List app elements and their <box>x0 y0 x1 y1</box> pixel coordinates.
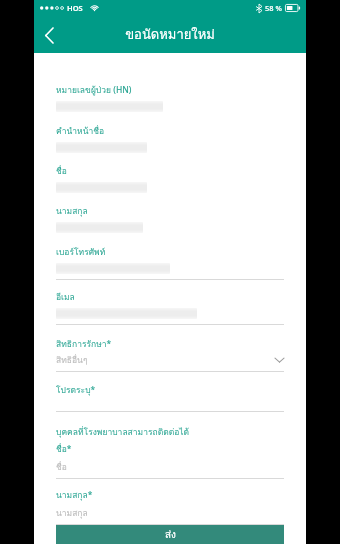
staticText: นามสกุล <box>56 204 88 218</box>
staticText: ส่ง <box>165 527 176 543</box>
staticText: คำนำหน้าชื่อ <box>56 124 105 138</box>
staticText: ชื่อ* <box>56 442 72 456</box>
staticText: โปรดระบุ* <box>56 383 96 397</box>
staticText: บุคคลที่โรงพยาบาลสามารถติดต่อได้ <box>56 425 190 439</box>
button[interactable]: Back <box>34 20 64 50</box>
staticText: สิทธิการรักษา* <box>56 337 112 351</box>
staticText: 58 % <box>265 3 282 13</box>
staticText: นามสกุล* <box>56 488 93 502</box>
staticText: ชื่อ <box>56 460 67 474</box>
button[interactable]: สิทธิอื่นๆ <box>56 353 284 367</box>
staticText: ชื่อ <box>56 164 67 178</box>
staticText: นามสกุล <box>56 506 88 520</box>
staticText: ขอนัดหมายใหม่ <box>125 24 215 45</box>
staticText: อีเมล <box>56 290 75 304</box>
staticText: เบอร์โทรศัพท์ <box>56 245 106 259</box>
button[interactable]: ส่ง <box>56 525 284 544</box>
staticText: หมายเลขผู้ป่วย (HN) <box>56 83 132 97</box>
staticText: สิทธิอื่นๆ <box>56 353 275 367</box>
staticText: HOS <box>67 3 83 13</box>
